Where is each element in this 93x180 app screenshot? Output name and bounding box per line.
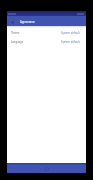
button[interactable]: Home — [43, 166, 50, 172]
staticText: System default — [61, 40, 80, 44]
button[interactable]: Language — [7, 37, 86, 46]
button[interactable]: Navigate up — [7, 16, 17, 26]
staticText: Language — [11, 40, 24, 44]
staticText: Appearance — [20, 20, 35, 24]
staticText: System default — [61, 31, 80, 35]
staticText: Theme — [11, 31, 20, 35]
button[interactable]: Theme — [7, 28, 86, 37]
